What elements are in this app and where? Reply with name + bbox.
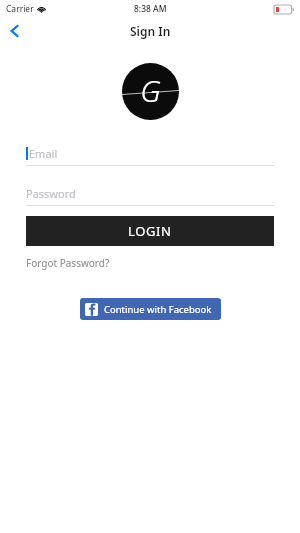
button[interactable]: Facebook — [80, 298, 221, 320]
staticText: Password — [26, 186, 76, 201]
staticText: 8:38 AM — [134, 3, 167, 15]
staticText: Continue with Facebook — [104, 303, 212, 316]
staticText: Email — [29, 146, 58, 161]
staticText: Carrier — [6, 3, 34, 15]
staticText: LOGIN — [128, 222, 172, 240]
staticText: G — [140, 70, 161, 111]
other: Facebook — [85, 303, 98, 316]
staticText: Sign In — [130, 23, 171, 39]
button[interactable]: LOGIN — [26, 216, 274, 246]
staticText: Forgot Password? — [26, 256, 110, 270]
button[interactable]: Back — [0, 18, 30, 44]
button[interactable]: Forgot Password? — [26, 256, 110, 270]
